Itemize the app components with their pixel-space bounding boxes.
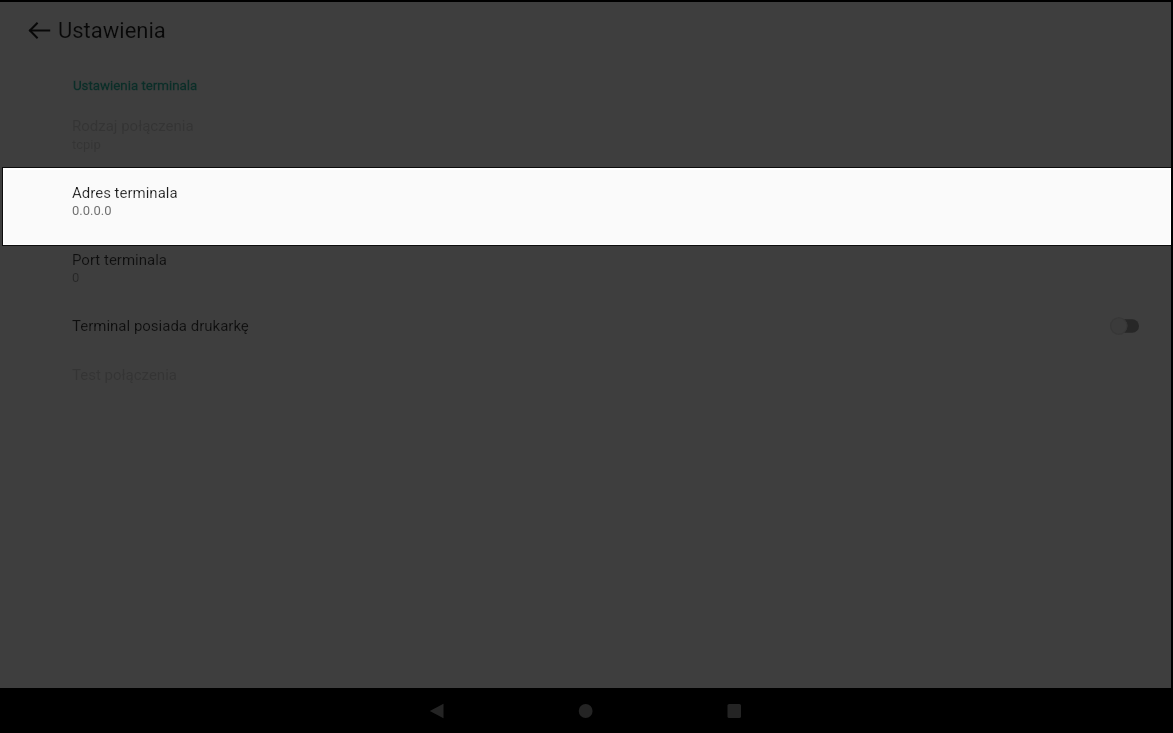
button[interactable]: Ustawienia (58, 18, 166, 44)
staticText: Ustawienia terminala (73, 78, 198, 94)
button[interactable]: Recent apps (698, 688, 768, 733)
staticText: 0.0.0.0 (72, 203, 112, 218)
staticText: Port terminala (72, 251, 167, 269)
staticText: 0 (72, 270, 80, 285)
button[interactable]: Rodzaj połączenia (0, 105, 1171, 168)
button[interactable]: Terminal posiada drukarkę (0, 306, 1171, 346)
button[interactable]: Adres terminala (0, 164, 1171, 246)
staticText: tcpip (72, 137, 101, 152)
staticText: Rodzaj połączenia (72, 117, 194, 135)
button[interactable]: Back (16, 8, 62, 54)
staticText: Test połączenia (72, 366, 177, 384)
staticText: Terminal posiada drukarkę (72, 317, 1107, 335)
staticText: Ustawienia (58, 18, 166, 44)
button[interactable]: Home (550, 688, 620, 733)
staticText: Adres terminala (72, 184, 178, 202)
button[interactable]: Back (401, 688, 471, 733)
